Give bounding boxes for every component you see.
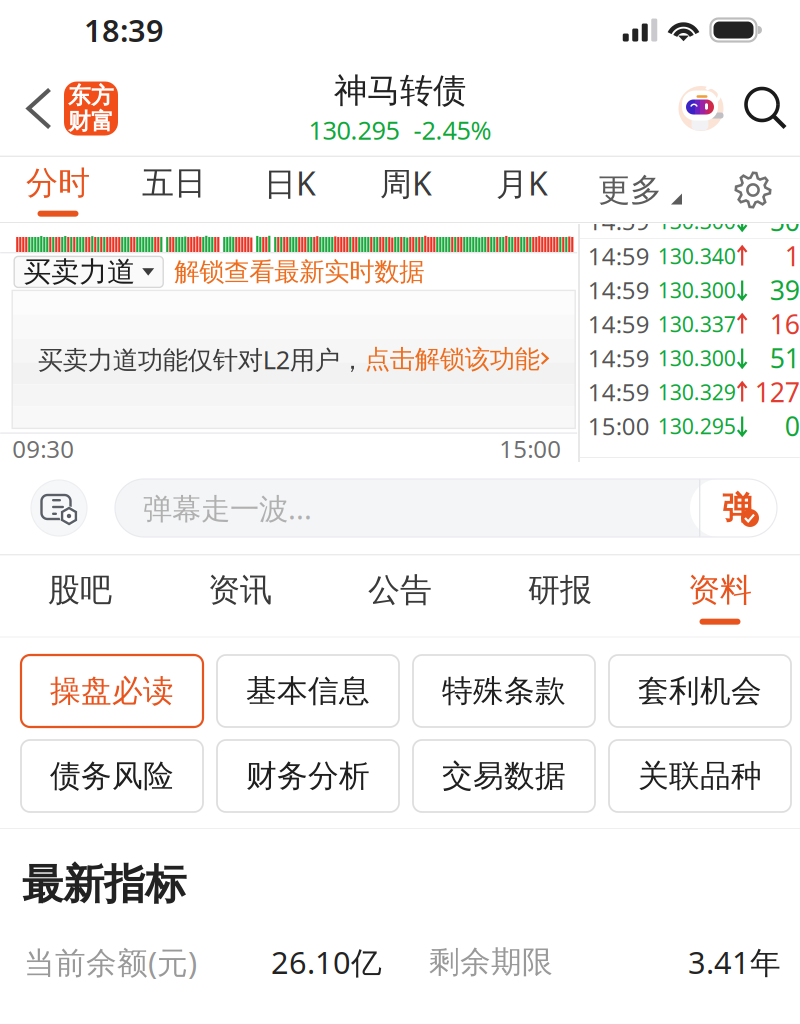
staticText: 神马转债: [334, 70, 466, 111]
button[interactable]: 月K: [464, 158, 580, 222]
staticText: 14:59: [588, 240, 650, 272]
staticText: 财富: [68, 107, 114, 135]
staticText: 0: [785, 408, 800, 444]
button[interactable]: 套利机会: [609, 655, 791, 727]
staticText: 公告: [368, 570, 432, 610]
staticText: 39: [770, 272, 800, 308]
staticText: 130.340: [658, 242, 736, 270]
staticText: 交易数据: [442, 757, 566, 795]
button[interactable]: 公告: [320, 558, 480, 636]
staticText: 130.300: [658, 276, 736, 304]
staticText: -2.45%: [413, 113, 491, 147]
button[interactable]: Search: [726, 86, 788, 130]
button[interactable]: 基本信息: [217, 655, 399, 727]
staticText: 日K: [264, 162, 316, 204]
staticText: 51: [770, 340, 800, 376]
button[interactable]: 财务分析: [217, 740, 399, 812]
staticText: 周K: [380, 162, 432, 204]
staticText: 点击解锁该功能: [365, 344, 540, 375]
staticText: 关联品种: [638, 757, 762, 795]
staticText: 14:59: [588, 205, 650, 237]
button[interactable]: Settings: [734, 171, 772, 209]
staticText: 127: [755, 374, 800, 410]
staticText: 当前余额(元): [24, 942, 197, 982]
staticText: 更多: [598, 170, 662, 210]
staticText: 基本信息: [246, 672, 370, 710]
staticText: 14:59: [588, 308, 650, 340]
button[interactable]: 更多: [580, 158, 700, 222]
staticText: 资料: [688, 570, 752, 610]
button[interactable]: Danmaku settings: [31, 480, 87, 536]
staticText: 130.295: [308, 113, 399, 147]
staticText: 东方: [68, 82, 114, 109]
staticText: 操盘必读: [50, 672, 174, 710]
staticText: 特殊条款: [442, 672, 566, 710]
staticText: 股吧: [48, 570, 112, 610]
button[interactable]: 交易数据: [413, 740, 595, 812]
staticText: 弹幕走一波...: [143, 488, 312, 527]
button[interactable]: 弹幕走一波...: [115, 479, 777, 537]
button[interactable]: 点击解锁该功能: [365, 344, 550, 375]
button[interactable]: 日K: [232, 158, 348, 222]
staticText: 买卖力道功能仅针对L2用户，: [38, 343, 365, 376]
button[interactable]: 资讯: [160, 558, 320, 636]
staticText: 资讯: [208, 570, 272, 610]
button[interactable]: East Money: [64, 81, 118, 135]
staticText: 130.329: [658, 378, 736, 406]
button[interactable]: 操盘必读: [21, 655, 203, 727]
staticText: 16: [770, 306, 800, 342]
button[interactable]: Back: [14, 75, 64, 141]
staticText: 130.300: [658, 207, 736, 235]
button[interactable]: 研报: [480, 558, 640, 636]
button[interactable]: 周K: [348, 158, 464, 222]
staticText: 月K: [496, 162, 548, 204]
staticText: 弹: [722, 488, 754, 528]
button[interactable]: 特殊条款: [413, 655, 595, 727]
staticText: 解锁查看最新实时数据: [174, 256, 424, 287]
staticText: 研报: [528, 570, 592, 610]
staticText: 债务风险: [50, 757, 174, 795]
staticText: 买卖力道: [23, 255, 135, 289]
staticText: 3.41年: [688, 942, 781, 982]
staticText: 130.337: [658, 310, 736, 338]
button[interactable]: 资料: [640, 558, 800, 636]
staticText: 15:00: [499, 433, 561, 465]
staticText: 14:59: [588, 274, 650, 306]
staticText: 分时: [26, 163, 90, 203]
staticText: 26.10亿: [271, 942, 382, 982]
staticText: 五日: [142, 163, 206, 203]
staticText: 14:59: [588, 342, 650, 374]
staticText: 剩余期限: [429, 943, 553, 981]
button[interactable]: 债务风险: [21, 740, 203, 812]
staticText: 50: [770, 203, 800, 239]
button[interactable]: 关联品种: [609, 740, 791, 812]
button[interactable]: AI assistant: [676, 83, 726, 133]
button[interactable]: 分时: [0, 158, 116, 222]
staticText: 套利机会: [638, 672, 762, 710]
button[interactable]: 股吧: [0, 558, 160, 636]
staticText: 130.295: [658, 412, 736, 440]
staticText: 14:59: [588, 376, 650, 408]
button[interactable]: 五日: [116, 158, 232, 222]
staticText: 130.300: [658, 344, 736, 372]
staticText: 1: [785, 238, 800, 274]
staticText: 15:00: [588, 410, 650, 442]
staticText: 09:30: [12, 433, 74, 465]
staticText: 18:39: [84, 10, 164, 50]
staticText: 财务分析: [246, 757, 370, 795]
staticText: 最新指标: [22, 859, 186, 910]
